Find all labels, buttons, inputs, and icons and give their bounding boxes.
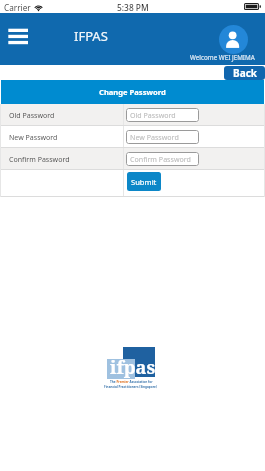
staticText: Submit <box>131 177 157 187</box>
staticText: New Password <box>130 132 179 142</box>
button[interactable]: Profile <box>219 25 248 54</box>
staticText: New Password <box>9 132 58 142</box>
staticText: Confirm Password <box>9 154 70 164</box>
staticText: The Premier Association for <box>110 380 153 384</box>
staticText: Welcome WEI JEMIMA <box>190 53 255 62</box>
button[interactable]: Open navigation menu <box>7 26 29 44</box>
staticText: 5:38 PM <box>117 2 149 13</box>
button[interactable]: Back <box>224 66 265 80</box>
staticText: Back <box>233 66 257 80</box>
staticText: ifpas <box>110 355 156 380</box>
button[interactable]: Old Password <box>126 108 199 122</box>
staticText: Change Password <box>99 87 166 97</box>
button[interactable]: Submit <box>127 172 161 191</box>
button[interactable]: Change Password <box>1 80 264 104</box>
staticText: Old Password <box>130 110 176 120</box>
staticText: IFPAS <box>74 27 108 45</box>
staticText: Confirm Password <box>130 154 191 164</box>
staticText: Old Password <box>9 110 55 120</box>
staticText: Carrier <box>4 2 31 13</box>
staticText: Financial Practitioners (Singapore) <box>104 385 157 389</box>
button[interactable]: Confirm Password <box>126 152 199 166</box>
button[interactable]: New Password <box>126 130 199 144</box>
